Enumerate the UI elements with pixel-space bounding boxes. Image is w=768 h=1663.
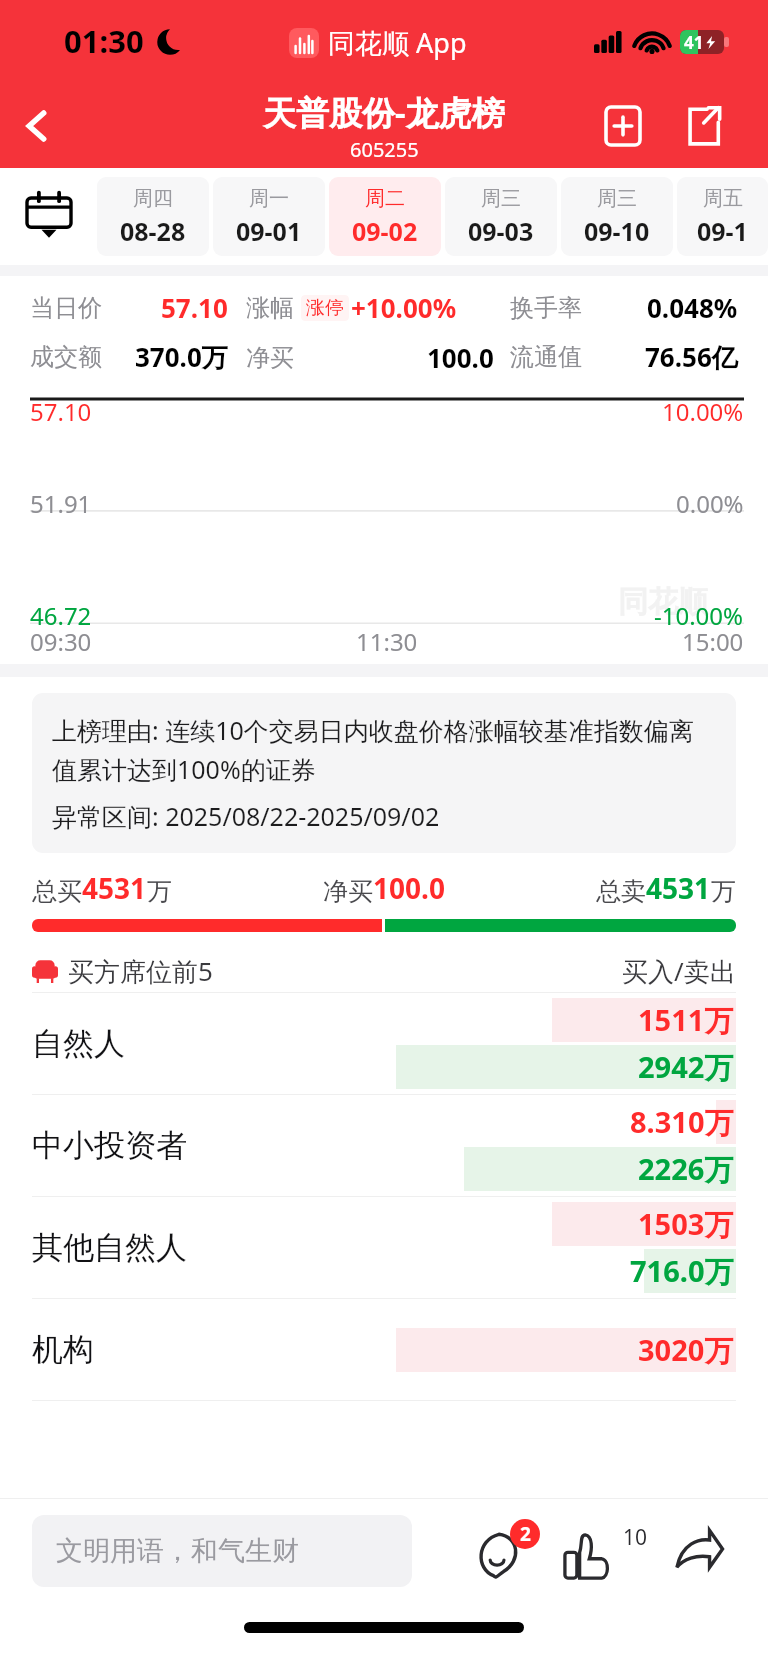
staticText: 57.10 bbox=[30, 395, 92, 428]
staticText: 1503万 bbox=[638, 1204, 734, 1244]
staticText: 周二 bbox=[365, 186, 405, 211]
staticText: 上榜理由: 连续10个交易日内收盘价格涨幅较基准指数偏离值累计达到100%的证券 bbox=[52, 713, 716, 786]
staticText: 4531 bbox=[646, 869, 711, 907]
staticText: 涨停 bbox=[306, 296, 344, 320]
staticText: 万 bbox=[147, 876, 172, 907]
button[interactable]: 文明用语，和气生财 bbox=[32, 1515, 412, 1587]
staticText: 100.0 bbox=[373, 869, 445, 907]
staticText: 2 bbox=[520, 1521, 531, 1547]
staticText: 370.0万 bbox=[135, 339, 228, 375]
button[interactable]: Share bbox=[672, 95, 734, 157]
staticText: 买入/卖出 bbox=[622, 953, 736, 989]
staticText: 净买 bbox=[323, 876, 373, 907]
staticText: 流通值 bbox=[510, 342, 582, 372]
button[interactable]: 其他自然人 bbox=[0, 1197, 768, 1299]
staticText: 1511万 bbox=[638, 1000, 734, 1040]
staticText: 100.0 bbox=[427, 340, 494, 375]
button[interactable]: 周三 bbox=[561, 177, 673, 256]
staticText: 0.00% bbox=[676, 487, 744, 520]
staticText: 换手率 bbox=[510, 293, 582, 323]
staticText: 8.310万 bbox=[630, 1102, 734, 1142]
button[interactable]: 周三 bbox=[445, 177, 557, 256]
staticText: 51.91 bbox=[30, 487, 92, 520]
staticText: 涨幅 bbox=[246, 293, 294, 323]
button[interactable]: Back bbox=[0, 88, 76, 164]
staticText: 15:00 bbox=[682, 625, 744, 658]
staticText: 周三 bbox=[597, 186, 637, 211]
staticText: 同花顺 App bbox=[328, 24, 467, 61]
staticText: 0.048% bbox=[647, 290, 738, 325]
staticText: -10.00% bbox=[654, 599, 744, 632]
staticText: 当日价 bbox=[30, 293, 102, 323]
button[interactable]: 机构 bbox=[0, 1299, 768, 1401]
staticText: 3020万 bbox=[638, 1330, 734, 1370]
staticText: 净买 bbox=[246, 343, 294, 373]
button[interactable]: Comments bbox=[462, 1511, 542, 1591]
staticText: 09-1 bbox=[697, 214, 748, 248]
staticText: 总卖 bbox=[596, 876, 646, 907]
button[interactable]: Share bbox=[662, 1511, 736, 1591]
staticText: 10 bbox=[623, 1523, 648, 1552]
staticText: 周五 bbox=[703, 186, 743, 211]
staticText: 4531 bbox=[82, 869, 147, 907]
staticText: 2226万 bbox=[638, 1149, 734, 1189]
button[interactable]: Like bbox=[564, 1511, 646, 1591]
staticText: 异常区间: 2025/08/22-2025/09/02 bbox=[52, 799, 440, 833]
button[interactable]: 周二 bbox=[329, 177, 441, 256]
staticText: 总买 bbox=[32, 876, 82, 907]
staticText: 09-02 bbox=[352, 214, 418, 248]
staticText: 万 bbox=[711, 876, 736, 907]
staticText: 46.72 bbox=[30, 599, 92, 632]
button[interactable]: Add to watchlist bbox=[592, 95, 654, 157]
staticText: 周一 bbox=[249, 186, 289, 211]
button[interactable]: 周五 bbox=[677, 177, 768, 256]
staticText: 自然人 bbox=[32, 1024, 125, 1063]
button[interactable]: 周四 bbox=[97, 177, 209, 256]
staticText: 08-28 bbox=[120, 214, 186, 248]
staticText: 10.00% bbox=[662, 395, 744, 428]
staticText: +10.00% bbox=[351, 290, 457, 325]
staticText: 周四 bbox=[133, 186, 173, 211]
staticText: 57.10 bbox=[161, 290, 228, 325]
staticText: 09:30 bbox=[30, 625, 92, 658]
staticText: 周三 bbox=[481, 186, 521, 211]
staticText: 01:30 bbox=[64, 20, 144, 62]
staticText: 同花顺 bbox=[618, 583, 708, 621]
button[interactable]: 中小投资者 bbox=[0, 1095, 768, 1197]
staticText: 76.56亿 bbox=[645, 339, 738, 375]
staticText: 成交额 bbox=[30, 342, 102, 372]
staticText: 11:30 bbox=[356, 625, 418, 658]
button[interactable]: 周一 bbox=[213, 177, 325, 256]
staticText: 天普股份-龙虎榜 bbox=[263, 90, 505, 135]
staticText: 09-01 bbox=[236, 214, 302, 248]
staticText: 机构 bbox=[32, 1330, 94, 1369]
staticText: 买方席位前5 bbox=[68, 953, 213, 989]
staticText: 09-10 bbox=[584, 214, 650, 248]
staticText: 其他自然人 bbox=[32, 1228, 187, 1267]
staticText: 716.0万 bbox=[630, 1251, 734, 1291]
staticText: 41 bbox=[684, 31, 704, 54]
button[interactable]: Pick date bbox=[0, 168, 97, 265]
button[interactable]: 自然人 bbox=[0, 993, 768, 1095]
staticText: 中小投资者 bbox=[32, 1126, 187, 1165]
staticText: 2942万 bbox=[638, 1047, 734, 1087]
staticText: 文明用语，和气生财 bbox=[56, 1534, 299, 1568]
staticText: 09-03 bbox=[468, 214, 534, 248]
staticText: 605255 bbox=[350, 136, 419, 163]
